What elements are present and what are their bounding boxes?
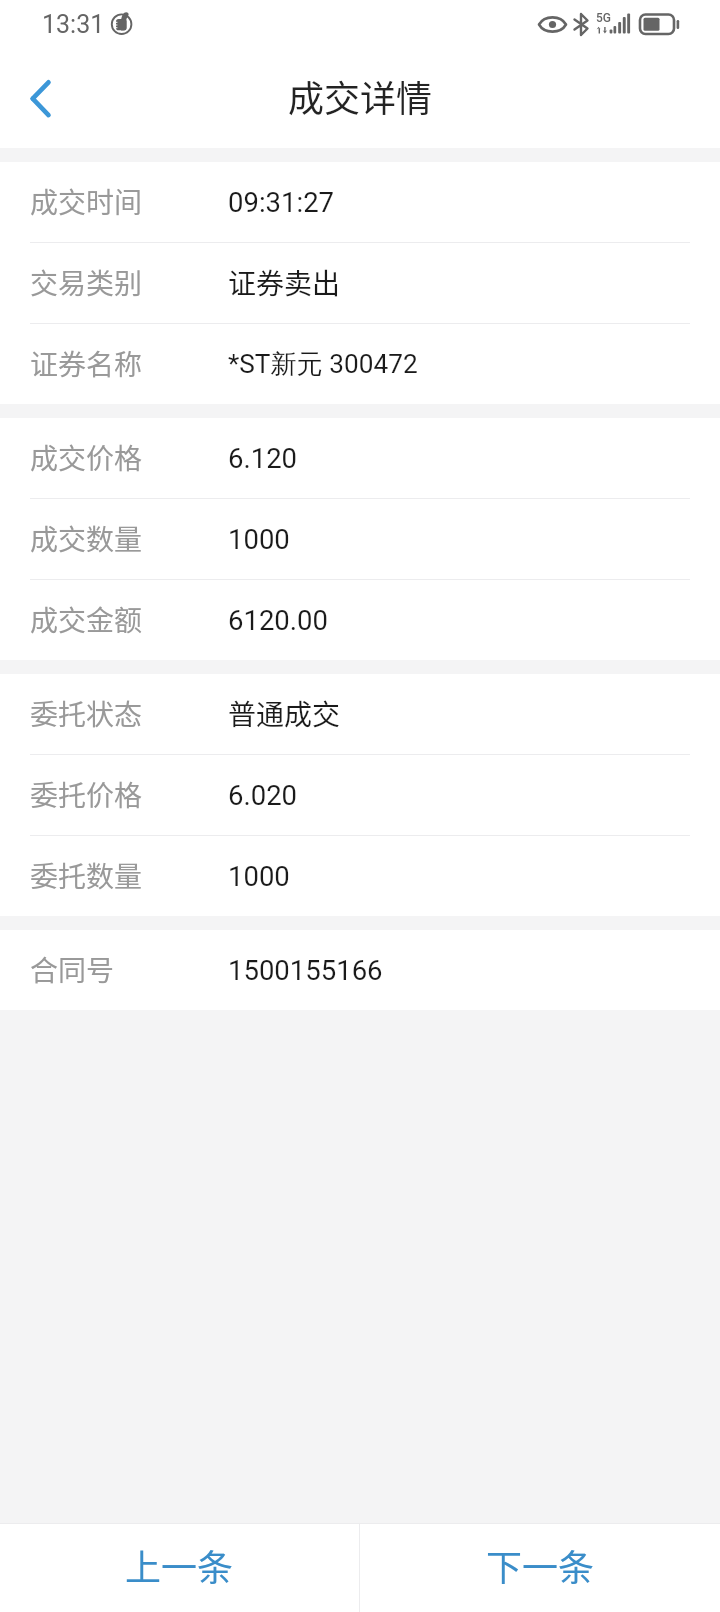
- staticText: 13:31: [42, 10, 105, 39]
- staticText: 成交时间: [30, 181, 143, 222]
- staticText: 6.020: [228, 779, 298, 811]
- staticText: 成交详情: [288, 70, 433, 122]
- staticText: 1000: [228, 523, 290, 555]
- button[interactable]: 合同号: [0, 930, 720, 1010]
- staticText: 合同号: [30, 949, 115, 990]
- staticText: 09:31:27: [228, 186, 335, 218]
- button[interactable]: 成交价格: [0, 418, 720, 498]
- staticText: 委托状态: [30, 693, 143, 734]
- button[interactable]: 委托状态: [0, 674, 720, 754]
- staticText: 交易类别: [30, 262, 143, 303]
- staticText: 成交数量: [30, 518, 143, 559]
- button[interactable]: Back: [0, 48, 80, 148]
- button[interactable]: 委托价格: [0, 755, 720, 835]
- staticText: 5G: [596, 11, 611, 25]
- button[interactable]: 成交金额: [0, 580, 720, 660]
- button[interactable]: 成交时间: [0, 162, 720, 242]
- staticText: 下一条: [486, 1539, 595, 1591]
- staticText: *ST新元 300472: [228, 348, 418, 381]
- staticText: 委托数量: [30, 855, 143, 896]
- button[interactable]: 证券名称: [0, 324, 720, 404]
- staticText: 1500155166: [228, 954, 383, 986]
- button[interactable]: 委托数量: [0, 836, 720, 916]
- button[interactable]: 成交数量: [0, 499, 720, 579]
- staticText: 6120.00: [228, 604, 328, 636]
- staticText: 6.120: [228, 442, 298, 474]
- staticText: 证券卖出: [228, 262, 341, 303]
- staticText: 普通成交: [228, 693, 341, 734]
- staticText: 成交价格: [30, 437, 143, 478]
- button[interactable]: 上一条: [0, 1524, 359, 1612]
- staticText: 证券名称: [30, 343, 143, 384]
- staticText: 上一条: [125, 1539, 234, 1591]
- staticText: 1000: [228, 860, 290, 892]
- button[interactable]: 下一条: [360, 1524, 720, 1612]
- staticText: 成交金额: [30, 599, 143, 640]
- button[interactable]: 交易类别: [0, 243, 720, 323]
- staticText: 委托价格: [30, 774, 143, 815]
